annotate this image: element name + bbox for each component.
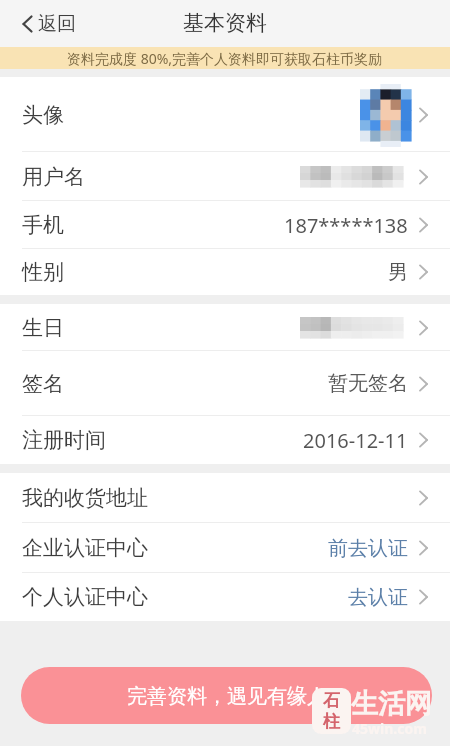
button[interactable]: 手机 [0, 201, 450, 249]
staticText: 前去认证 [328, 536, 408, 561]
staticText: 完善资料，遇见有缘人 [127, 684, 327, 709]
staticText: 石 [323, 690, 340, 711]
staticText: 注册时间 [22, 427, 106, 453]
staticText: 签名 [22, 371, 64, 397]
staticText: 187*****138 [284, 212, 408, 239]
button[interactable]: 返回 [0, 0, 113, 47]
button[interactable]: 注册时间 [0, 416, 450, 464]
staticText: 生日 [22, 315, 64, 341]
staticText: 去认证 [348, 585, 408, 610]
staticText: 男 [388, 260, 408, 285]
button[interactable]: 企业认证中心 [0, 523, 450, 573]
staticText: 生活网 [351, 687, 432, 721]
button[interactable]: 用户名 [0, 152, 450, 201]
staticText: 返回 [38, 12, 76, 36]
staticText: 手机 [22, 212, 64, 238]
staticText: 用户名 [22, 164, 85, 190]
staticText: 暂无签名 [328, 371, 408, 396]
button[interactable]: 我的收货地址 [0, 473, 450, 523]
button[interactable]: 个人认证中心 [0, 573, 450, 621]
button[interactable]: 完善资料，遇见有缘人 [21, 667, 432, 724]
button[interactable]: 生日 [0, 304, 450, 351]
staticText: 个人认证中心 [22, 584, 148, 610]
staticText: 企业认证中心 [22, 535, 148, 561]
staticText: 基本资料 [183, 10, 267, 36]
staticText: 资料完成度 80%,完善个人资料即可获取石柱币奖励 [67, 49, 383, 68]
button[interactable]: 性别 [0, 249, 450, 295]
staticText: 我的收货地址 [22, 485, 148, 511]
staticText: 头像 [22, 102, 64, 128]
button[interactable]: 头像 [0, 77, 450, 152]
staticText: 45win.com [352, 719, 427, 738]
button[interactable]: 签名 [0, 351, 450, 416]
staticText: 柱 [323, 711, 340, 732]
staticText: 2016-12-11 [303, 427, 408, 454]
staticText: 性别 [22, 259, 64, 285]
